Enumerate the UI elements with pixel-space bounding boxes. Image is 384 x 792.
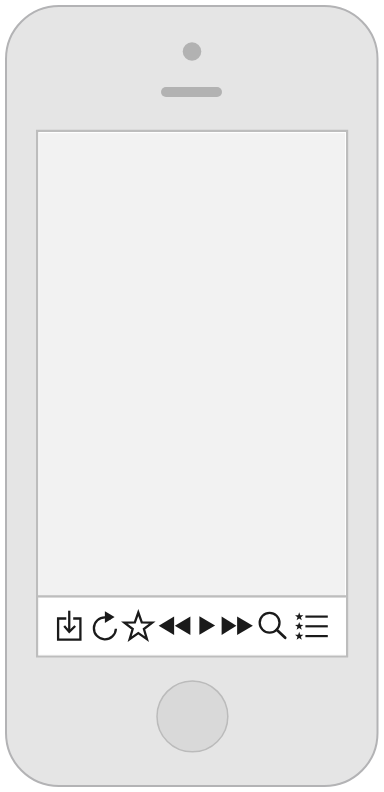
button[interactable]: Favorite [121, 602, 156, 648]
button[interactable]: Search [256, 602, 290, 648]
button[interactable]: Starred list [291, 602, 333, 648]
button[interactable]: Rewind [156, 602, 193, 648]
button[interactable]: Redo [88, 602, 122, 648]
button[interactable]: Play [195, 602, 219, 648]
button[interactable]: Home [157, 681, 228, 752]
button[interactable]: Fast forward [219, 602, 256, 648]
button[interactable]: Download [52, 602, 88, 648]
